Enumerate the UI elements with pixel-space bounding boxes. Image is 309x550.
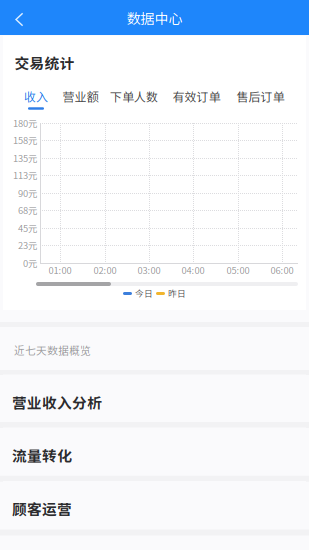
staticText: 45元 <box>18 221 37 235</box>
staticText: 01:00 <box>48 263 71 277</box>
staticText: 180元 <box>13 116 37 130</box>
button[interactable]: 有效订单 <box>172 90 220 110</box>
button[interactable]: 售后订单 <box>236 90 284 110</box>
staticText: 昨日 <box>168 287 186 299</box>
staticText: 23元 <box>18 238 37 252</box>
button[interactable]: Back <box>0 0 38 35</box>
button[interactable]: 营业收入分析 <box>3 374 306 422</box>
button[interactable]: 下单人数 <box>110 90 158 110</box>
staticText: 158元 <box>13 133 37 147</box>
staticText: 02:00 <box>93 263 116 277</box>
button[interactable]: 流量转化 <box>3 427 306 475</box>
staticText: 顾客运营 <box>12 498 72 519</box>
staticText: 营业收入分析 <box>12 391 102 413</box>
staticText: 有效订单 <box>172 88 220 105</box>
staticText: 0元 <box>23 256 37 270</box>
staticText: 今日 <box>135 287 153 299</box>
staticText: 90元 <box>18 186 37 200</box>
button[interactable]: 收入 <box>24 90 48 110</box>
staticText: 流量转化 <box>12 444 72 466</box>
staticText: 135元 <box>13 151 37 165</box>
staticText: 113元 <box>13 168 37 182</box>
staticText: 05:00 <box>226 263 249 277</box>
button[interactable]: 顾客运营 <box>3 481 306 528</box>
staticText: 数据中心 <box>126 8 182 28</box>
staticText: 售后订单 <box>236 88 284 105</box>
staticText: 交易统计 <box>14 52 74 73</box>
staticText: 收入 <box>24 88 48 105</box>
staticText: 03:00 <box>137 263 160 277</box>
staticText: 04:00 <box>181 263 204 277</box>
button[interactable]: 近七天数据概览 <box>3 327 306 370</box>
staticText: 06:00 <box>270 263 293 277</box>
staticText: 68元 <box>18 203 37 217</box>
staticText: 近七天数据概览 <box>14 342 91 358</box>
staticText: 下单人数 <box>110 88 158 105</box>
button[interactable]: 营业额 <box>62 90 98 110</box>
staticText: 营业额 <box>62 88 98 105</box>
